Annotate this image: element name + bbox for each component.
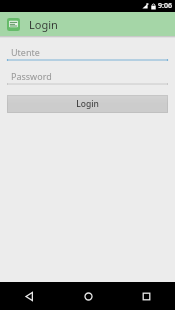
staticText: Utente [11, 46, 40, 58]
staticText: Password [11, 70, 52, 82]
staticText: Login [76, 98, 99, 110]
staticText: 9:06 [158, 1, 172, 11]
button[interactable]: App icon, navigate up [3, 14, 23, 34]
button[interactable]: Back [0, 282, 59, 310]
button[interactable]: Utente [7, 44, 168, 61]
button[interactable]: Password [7, 68, 168, 85]
button[interactable]: Login [7, 95, 168, 113]
button[interactable]: Recent apps [117, 282, 175, 310]
staticText: Login [29, 17, 58, 32]
button[interactable]: Home [59, 282, 117, 310]
